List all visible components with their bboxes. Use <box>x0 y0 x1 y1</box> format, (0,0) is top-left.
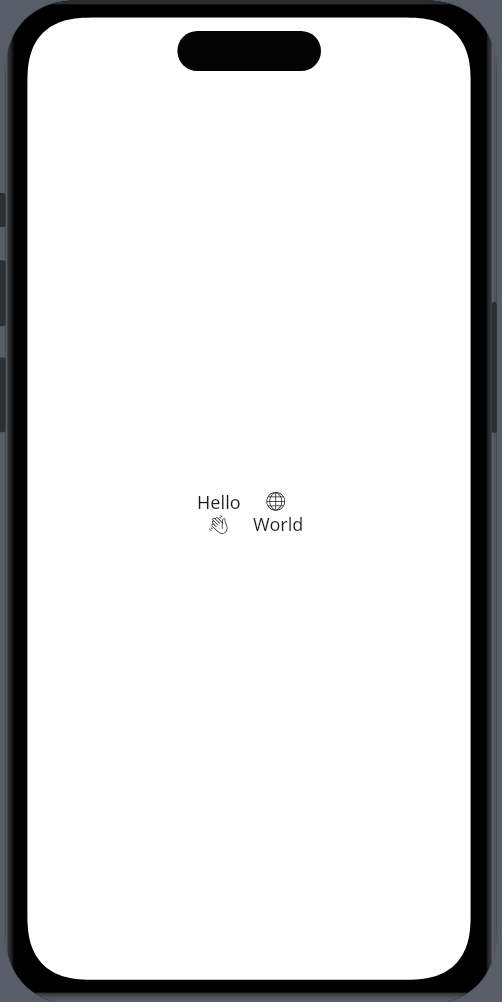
staticText: World <box>253 512 304 537</box>
staticText: Hello <box>197 490 241 515</box>
